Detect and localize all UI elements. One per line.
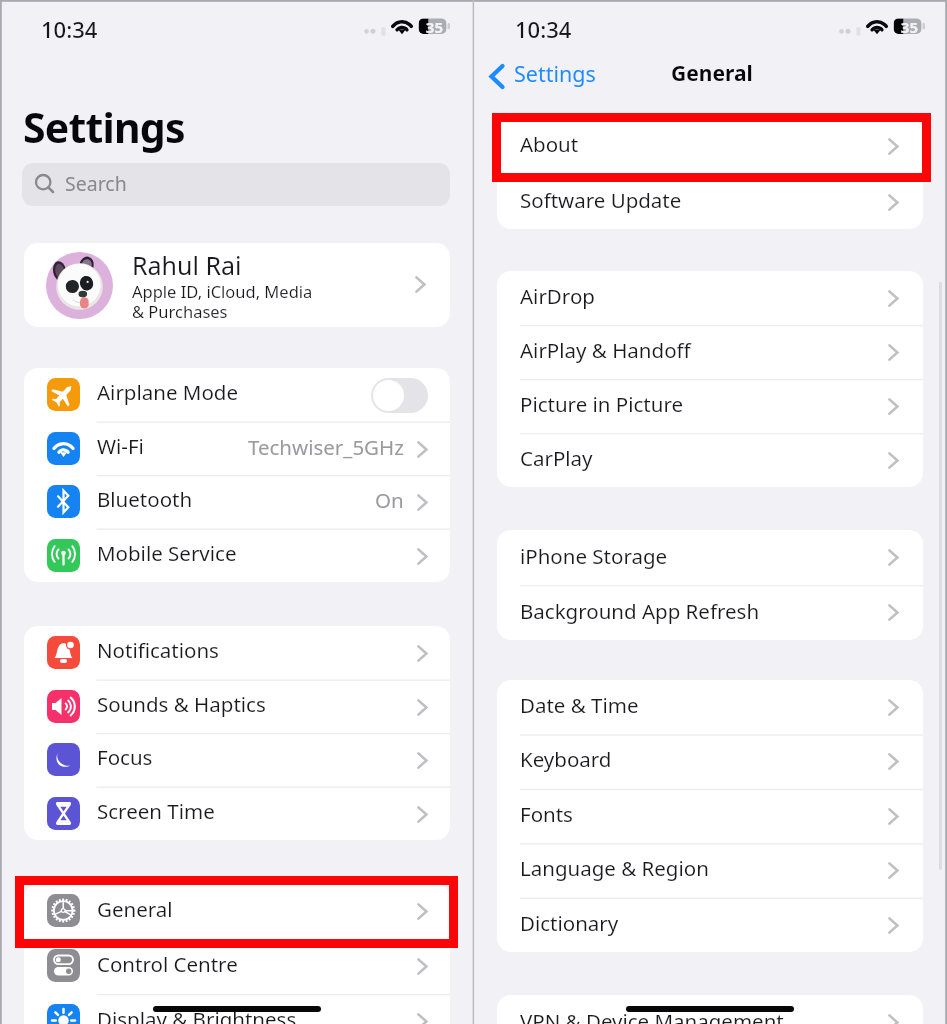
staticText: 10:34 (41, 14, 98, 44)
button[interactable]: Search (22, 163, 450, 206)
button[interactable]: Wi-Fi (24, 422, 450, 476)
button[interactable]: Sounds & Haptics (24, 680, 450, 734)
staticText: Rahul Rai (132, 248, 242, 282)
button[interactable]: VPN & Device Management (497, 995, 923, 1024)
staticText: Settings (23, 99, 185, 155)
button[interactable]: Keyboard (497, 734, 923, 788)
button[interactable]: Screen Time (24, 787, 450, 840)
button[interactable]: Language & Region (497, 843, 923, 897)
button[interactable]: Bluetooth (24, 475, 450, 529)
staticText: Focus (97, 743, 153, 771)
staticText: AirPlay & Handoff (520, 336, 691, 364)
staticText: 10:34 (515, 14, 572, 44)
button[interactable]: iPhone Storage (497, 530, 923, 585)
button[interactable]: Dictionary (497, 898, 923, 952)
button[interactable]: Date & Time (497, 680, 923, 734)
staticText: Control Centre (97, 950, 238, 978)
button[interactable]: Rahul Rai (24, 243, 450, 327)
staticText: Wi-Fi (97, 432, 144, 460)
staticText: General (671, 59, 753, 88)
staticText: Sounds & Haptics (97, 690, 266, 718)
button[interactable]: Picture in Picture (497, 379, 923, 433)
staticText: 35 (445, 17, 918, 37)
staticText: Notifications (97, 636, 219, 664)
staticText: Fonts (520, 800, 573, 828)
staticText: 35 (0, 17, 443, 37)
staticText: General (97, 895, 173, 923)
button[interactable]: CarPlay (497, 433, 923, 487)
button[interactable]: About (497, 118, 923, 174)
staticText: CarPlay (520, 444, 593, 472)
button[interactable]: Control Centre (24, 939, 450, 994)
button[interactable]: Focus (24, 733, 450, 787)
staticText: AirDrop (520, 282, 595, 310)
button[interactable]: Notifications (24, 626, 450, 680)
staticText: Mobile Service (97, 539, 237, 567)
button[interactable]: AirPlay & Handoff (497, 325, 923, 379)
staticText: Keyboard (520, 745, 612, 773)
staticText: VPN & Device Management (520, 1007, 784, 1024)
button[interactable]: General (24, 884, 450, 939)
button[interactable]: Background App Refresh (497, 585, 923, 640)
staticText: Screen Time (97, 797, 215, 825)
staticText: Display & Brightness (97, 1005, 297, 1024)
staticText: Settings (514, 59, 596, 88)
button[interactable]: AirDrop (497, 271, 923, 325)
staticText: iPhone Storage (520, 542, 668, 570)
button[interactable]: Settings (485, 59, 596, 91)
staticText: About (520, 130, 579, 158)
button[interactable]: Mobile Service (24, 529, 450, 582)
button[interactable]: Airplane Mode (24, 368, 450, 422)
staticText: Airplane Mode (97, 378, 238, 406)
staticText: Search (65, 170, 127, 197)
staticText: Language & Region (520, 854, 709, 882)
staticText: Bluetooth (97, 485, 193, 513)
staticText: Software Update (520, 186, 682, 214)
button[interactable]: Display & Brightness (24, 994, 450, 1024)
staticText: Apple ID, iCloud, Media & Purchases (132, 280, 313, 323)
staticText: Background App Refresh (520, 597, 760, 625)
staticText: Date & Time (520, 691, 639, 719)
staticText: Dictionary (520, 909, 619, 937)
button[interactable]: Airplane Mode toggle (371, 378, 428, 413)
staticText: Techwiser_5GHz (248, 433, 404, 461)
button[interactable]: Software Update (497, 174, 923, 229)
staticText: On (375, 486, 404, 514)
staticText: Picture in Picture (520, 390, 684, 418)
button[interactable]: Fonts (497, 789, 923, 843)
